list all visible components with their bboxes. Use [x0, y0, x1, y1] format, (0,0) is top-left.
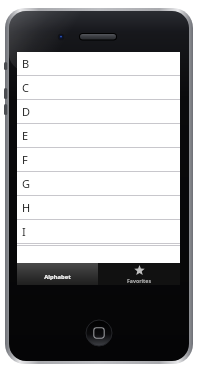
button[interactable]: I: [17, 220, 180, 244]
other: Favorites: [134, 265, 145, 276]
staticText: Alphabet: [44, 273, 71, 281]
staticText: D: [22, 104, 31, 119]
button[interactable]: Favorites: [98, 263, 180, 285]
button[interactable]: C: [17, 76, 180, 100]
staticText: E: [22, 128, 29, 143]
button[interactable]: J: [17, 244, 180, 246]
staticText: C: [22, 80, 29, 95]
staticText: H: [22, 200, 31, 215]
button[interactable]: B: [17, 52, 180, 76]
staticText: G: [22, 176, 31, 191]
staticText: I: [22, 224, 26, 239]
button[interactable]: H: [17, 196, 180, 220]
staticText: F: [22, 152, 28, 167]
staticText: B: [22, 56, 30, 71]
button[interactable]: E: [17, 124, 180, 148]
button[interactable]: F: [17, 148, 180, 172]
button[interactable]: D: [17, 100, 180, 124]
staticText: Favorites: [127, 277, 151, 284]
button[interactable]: G: [17, 172, 180, 196]
button[interactable]: Alphabet: [17, 263, 98, 285]
staticText: Carrier: [20, 59, 43, 68]
